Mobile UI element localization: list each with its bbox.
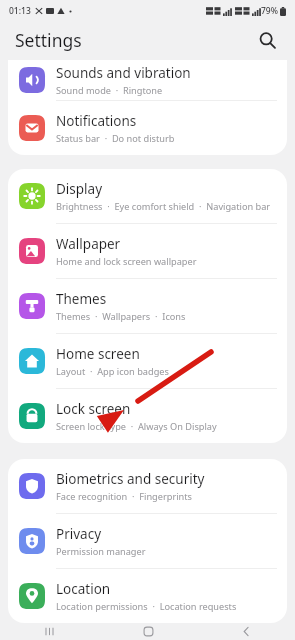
button[interactable]: Back — [197, 623, 295, 640]
staticText: Screen lock type · Always On Display — [56, 420, 217, 433]
button[interactable]: Search — [253, 26, 281, 54]
button[interactable]: Privacy — [8, 514, 287, 569]
button[interactable]: Display — [8, 169, 287, 224]
button[interactable]: Location — [8, 569, 287, 623]
button[interactable]: Wallpaper — [8, 224, 287, 279]
staticText: Home screen — [56, 345, 140, 363]
staticText: Location permissions · Location requests — [56, 600, 237, 613]
staticText: Themes · Wallpapers · Icons — [56, 310, 186, 323]
button[interactable]: Notifications — [8, 101, 287, 155]
staticText: Themes — [56, 290, 107, 308]
staticText: Home and lock screen wallpaper — [56, 255, 197, 268]
staticText: 01:13 — [9, 5, 31, 17]
staticText: Sounds and vibration — [56, 64, 191, 82]
staticText: Lock screen — [56, 400, 131, 418]
staticText: Biometrics and security — [56, 470, 205, 488]
staticText: 79% — [261, 5, 278, 17]
staticText: Display — [56, 180, 103, 198]
staticText: Privacy — [56, 525, 102, 543]
button[interactable]: Themes — [8, 279, 287, 334]
staticText: Settings — [15, 28, 82, 52]
button[interactable]: Home — [99, 623, 197, 640]
button[interactable]: Biometrics and security — [8, 459, 287, 514]
button[interactable]: Lock screen — [8, 389, 287, 443]
staticText: Permission manager — [56, 545, 146, 558]
staticText: Location — [56, 580, 111, 598]
staticText: Status bar · Do not disturb — [56, 132, 175, 145]
button[interactable]: Sounds and vibration — [8, 60, 287, 101]
button[interactable]: Recent apps — [0, 623, 99, 640]
staticText: Notifications — [56, 112, 137, 130]
staticText: Brightness · Eye comfort shield · Naviga… — [56, 200, 271, 213]
button[interactable]: Home screen — [8, 334, 287, 389]
staticText: Face recognition · Fingerprints — [56, 490, 192, 503]
staticText: Wallpaper — [56, 235, 121, 253]
staticText: Layout · App icon badges — [56, 365, 169, 378]
staticText: Sound mode · Ringtone — [56, 84, 163, 97]
